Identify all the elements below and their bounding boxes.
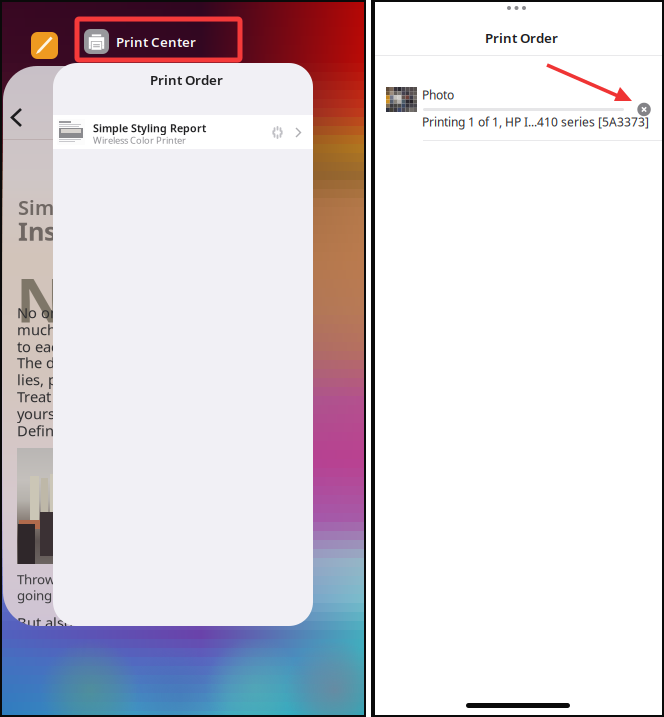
staticText: yourse	[17, 404, 63, 423]
staticText: Print Center	[116, 33, 196, 51]
staticText: lies, pe	[17, 370, 65, 389]
button[interactable]: Simple Styling Report	[53, 115, 313, 149]
staticText: to each	[17, 337, 67, 356]
staticText: Wireless Color Printer	[93, 134, 186, 146]
staticText: But also.	[17, 613, 77, 632]
staticText: Photo	[422, 87, 454, 103]
staticText: N	[16, 258, 66, 339]
staticText: Print Order	[150, 71, 223, 89]
staticText: Print Order	[485, 29, 558, 47]
staticText: Printing 1 of 1, HP I...410 series [5A33…	[422, 114, 649, 130]
staticText: much h	[17, 320, 69, 339]
staticText: Throw	[17, 570, 55, 588]
staticText: Simple Styling	[18, 194, 158, 221]
staticText: Simple Styling Report	[93, 121, 206, 135]
staticText: Definit	[17, 421, 63, 440]
staticText: No one	[17, 303, 67, 322]
staticText: Treat th	[17, 387, 69, 406]
staticText: Insider	[18, 214, 107, 248]
button[interactable]: Photo	[373, 56, 664, 142]
staticText: The de	[17, 353, 63, 372]
staticText: going o	[17, 586, 63, 604]
button[interactable]: Cancel print job	[637, 103, 651, 116]
